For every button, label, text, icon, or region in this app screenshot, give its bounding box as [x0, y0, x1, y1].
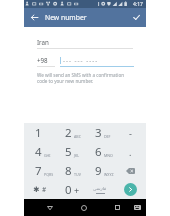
- button[interactable]: Save: [127, 8, 146, 27]
- staticText: 1: [35, 125, 42, 141]
- staticText: TUV: [74, 172, 81, 177]
- staticText: ABC: [74, 134, 81, 139]
- staticText: WXYZ: [104, 172, 114, 177]
- staticText: -: [129, 127, 132, 139]
- button[interactable]: 7: [24, 161, 54, 180]
- staticText: Iran: [37, 38, 49, 46]
- staticText: فارسی: [93, 186, 107, 191]
- button[interactable]: Back: [28, 11, 41, 24]
- button[interactable]: Go: [124, 183, 137, 196]
- staticText: PQRS: [44, 172, 54, 177]
- button[interactable]: 4: [24, 142, 54, 161]
- button[interactable]: Back: [41, 199, 58, 216]
- staticText: ✱: [33, 185, 40, 194]
- staticText: MNO: [104, 153, 113, 158]
- button[interactable]: Go: [115, 180, 146, 199]
- button[interactable]: ✱: [24, 180, 54, 199]
- staticText: 8: [65, 163, 72, 179]
- staticText: 2: [65, 125, 72, 141]
- staticText: 6: [95, 144, 102, 160]
- button[interactable]: Recents: [109, 199, 126, 216]
- button[interactable]: 6: [84, 142, 115, 161]
- button[interactable]: Home: [75, 199, 92, 216]
- staticText: 3: [95, 125, 102, 141]
- staticText: .: [129, 146, 132, 158]
- button[interactable]: 8: [54, 161, 84, 180]
- staticText: GHI: [44, 153, 51, 158]
- staticText: #: [42, 185, 47, 194]
- staticText: 4: [35, 144, 42, 160]
- button[interactable]: 0: [54, 180, 84, 199]
- staticText: --- --- ----: [63, 56, 99, 64]
- button[interactable]: 2: [54, 123, 84, 142]
- button[interactable]: -: [115, 123, 146, 142]
- staticText: 4:17: [133, 1, 143, 8]
- staticText: We will send an SMS with a confirmation …: [37, 72, 125, 84]
- button[interactable]: .: [115, 142, 146, 161]
- button[interactable]: Backspace: [115, 161, 146, 180]
- staticText: +98: [37, 56, 48, 64]
- staticText: New number: [45, 13, 127, 22]
- staticText: 7: [35, 163, 42, 179]
- button[interactable]: 3: [84, 123, 115, 142]
- staticText: 9: [95, 163, 102, 179]
- staticText: DEF: [104, 134, 111, 139]
- other: Backspace: [126, 168, 135, 174]
- button[interactable]: 9: [84, 161, 115, 180]
- staticText: 5: [65, 144, 72, 160]
- button[interactable]: 1: [24, 123, 54, 142]
- button[interactable]: 5: [54, 142, 84, 161]
- staticText: 0: [65, 182, 72, 198]
- button[interactable]: فارسی: [84, 180, 115, 199]
- staticText: +: [74, 184, 80, 196]
- button[interactable]: Keyboard: [131, 201, 144, 214]
- staticText: JKL: [74, 153, 80, 158]
